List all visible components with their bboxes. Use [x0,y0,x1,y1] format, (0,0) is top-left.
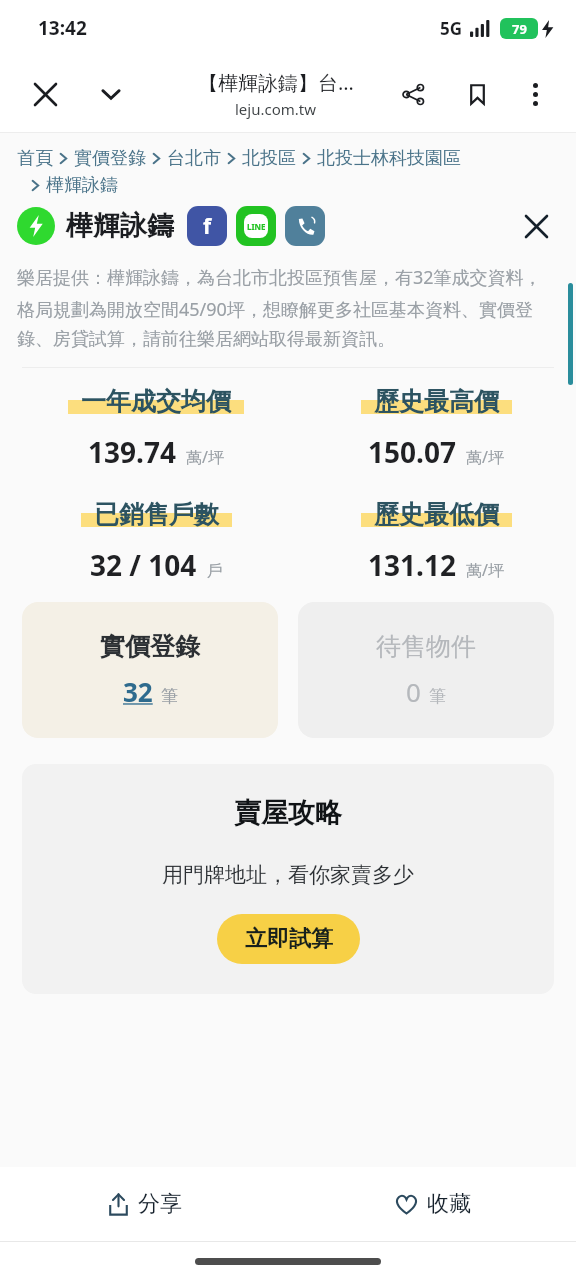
staticText: f [203,212,212,241]
other: Share on Facebook [203,212,212,241]
staticText: 賣屋攻略 [234,796,342,830]
button[interactable]: 樺輝詠鑄 [46,174,118,197]
button[interactable]: 收藏 [288,1167,576,1241]
staticText: 樂居提供：樺輝詠鑄，為台北市北投區預售屋，有32筆成交資料，格局規劃為開放空間4… [17,265,559,351]
staticText: 一年成交均價 [81,386,231,417]
staticText: 樺輝詠鑄 [66,209,174,243]
button[interactable]: Call [285,206,325,246]
staticText: LINE [247,221,266,232]
button[interactable]: Close [22,71,68,117]
staticText: 筆 [161,686,178,707]
staticText: 收藏 [427,1190,471,1218]
staticText: 139.74 [88,433,176,471]
staticText: 北投區 [242,147,296,170]
button[interactable]: 實價登錄 [74,147,146,170]
staticText: 實價登錄 [100,631,200,662]
button[interactable]: 北投士林科技園區 [317,147,461,170]
staticText: 北投士林科技園區 [317,147,461,170]
staticText: 戶 [207,561,223,581]
button[interactable]: 立即試算 [217,914,360,964]
button[interactable]: 待售物件 [298,602,554,738]
button[interactable]: Bookmark [454,71,500,117]
button[interactable]: 分享 [0,1167,288,1241]
staticText: 0 [406,674,421,709]
button[interactable]: Share on Facebook [187,206,227,246]
staticText: 分享 [138,1190,182,1218]
staticText: 用門牌地址，看你家賣多少 [162,862,414,888]
button[interactable]: Dismiss [514,204,558,248]
staticText: 歷史最低價 [374,499,499,530]
staticText: 筆 [429,686,446,707]
button[interactable]: 首頁 [17,147,53,170]
staticText: 【樺輝詠鑄】台… [198,69,354,96]
button[interactable]: More options [512,71,558,117]
button[interactable]: Collapse [88,71,134,117]
button[interactable]: 北投區 [242,147,296,170]
staticText: 萬/坪 [466,446,504,468]
staticText: 實價登錄 [74,147,146,170]
staticText: leju.com.tw [235,99,317,119]
staticText: 已銷售戶數 [94,499,219,530]
staticText: 立即試算 [245,925,333,953]
other: Call [294,215,316,237]
staticText: 歷史最高價 [374,386,499,417]
staticText: 32 [123,674,153,709]
staticText: 5G [440,17,463,40]
staticText: 樺輝詠鑄 [46,174,118,197]
staticText: 32 / 104 [90,546,197,584]
other: Share on LINE [244,214,268,238]
staticText: 150.07 [368,433,456,471]
staticText: 131.12 [368,546,456,584]
staticText: 待售物件 [376,631,476,662]
button[interactable]: Share [390,71,436,117]
staticText: 萬/坪 [466,559,504,581]
button[interactable]: 台北市 [167,147,221,170]
button[interactable]: 實價登錄 [22,602,278,738]
staticText: 13:42 [38,15,87,41]
button[interactable]: Leju logo [17,207,55,245]
staticText: 首頁 [17,147,53,170]
staticText: 萬/坪 [186,446,224,468]
staticText: 台北市 [167,147,221,170]
staticText: 79 [512,20,527,38]
button[interactable]: Share on LINE [236,206,276,246]
